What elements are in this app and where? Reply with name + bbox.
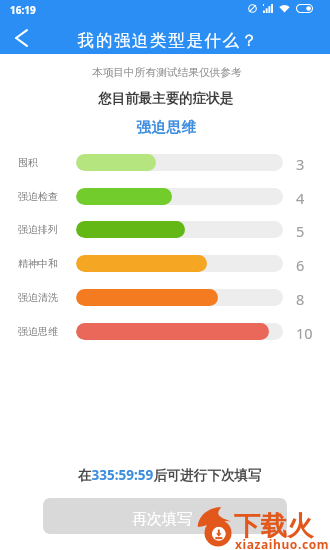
staticText: 本项目中所有测试结果仅供参考: [92, 66, 242, 79]
staticText: 强迫思维: [136, 118, 197, 136]
button[interactable]: 再次填写: [43, 498, 287, 534]
staticText: 再次填写: [132, 510, 192, 529]
staticText: 6: [296, 255, 305, 272]
staticText: 精神中和: [18, 257, 58, 270]
staticText: 5: [296, 221, 305, 238]
staticText: 16:19: [10, 3, 36, 17]
staticText: 囤积: [18, 156, 38, 169]
staticText: 下载火: [234, 509, 314, 542]
staticText: 您目前最主要的症状是: [98, 90, 233, 107]
staticText: 强迫检查: [18, 190, 58, 203]
staticText: 在335:59:59后可进行下次填写: [78, 466, 262, 484]
staticText: xiazaihuo.com: [235, 536, 330, 550]
staticText: 强迫排列: [18, 223, 58, 236]
staticText: 8: [296, 289, 305, 306]
staticText: 3: [296, 154, 305, 171]
staticText: 10: [296, 323, 313, 340]
staticText: 强迫思维: [18, 325, 58, 338]
staticText: 强迫清洗: [18, 291, 58, 304]
button[interactable]: Back: [4, 21, 38, 54]
staticText: 我的强迫类型是什么？: [77, 30, 258, 51]
staticText: 4: [296, 188, 305, 205]
